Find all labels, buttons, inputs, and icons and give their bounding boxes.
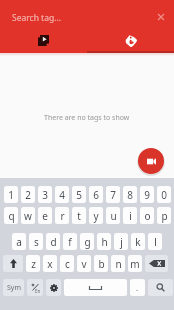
button[interactable]: c <box>60 255 74 272</box>
staticText: u <box>110 209 117 223</box>
button[interactable]: q <box>4 207 18 224</box>
button[interactable]: p <box>157 207 171 224</box>
staticText: 6 <box>93 188 99 202</box>
button[interactable]: h <box>97 233 111 250</box>
button[interactable]: 7 <box>106 186 120 203</box>
staticText: d <box>50 235 57 249</box>
staticText: j <box>120 235 123 249</box>
button[interactable]: s <box>29 233 43 250</box>
staticText: En <box>35 288 41 294</box>
button[interactable]: Record video <box>138 148 164 174</box>
staticText: r <box>60 209 65 223</box>
staticText: m <box>130 257 140 271</box>
staticText: 5 <box>76 188 82 202</box>
button[interactable]: Tags tab <box>87 30 174 51</box>
staticText: 8 <box>127 188 133 202</box>
button[interactable]: r <box>55 207 69 224</box>
staticText: 9 <box>144 188 150 202</box>
staticText: n <box>115 257 122 271</box>
staticText: i <box>129 209 132 223</box>
staticText: k <box>135 235 141 249</box>
button[interactable]: x <box>43 255 57 272</box>
staticText: e <box>42 209 48 223</box>
button[interactable]: 8 <box>123 186 137 203</box>
staticText: c <box>65 257 70 271</box>
button[interactable]: 1 <box>4 186 18 203</box>
staticText: l <box>154 235 157 249</box>
button[interactable]: . <box>130 279 145 296</box>
staticText: w <box>24 209 32 223</box>
button[interactable]: 0 <box>157 186 171 203</box>
button[interactable]: w <box>21 207 35 224</box>
button[interactable]: n <box>111 255 125 272</box>
staticText: t <box>77 209 81 223</box>
button[interactable]: d <box>46 233 60 250</box>
staticText: p <box>161 209 168 223</box>
button[interactable]: 6 <box>89 186 103 203</box>
button[interactable]: 3 <box>38 186 52 203</box>
staticText: There are no tags to show <box>44 113 130 123</box>
staticText: 1 <box>8 188 14 202</box>
staticText: q <box>8 209 15 223</box>
staticText: 7 <box>110 188 116 202</box>
staticText: 3 <box>42 188 48 202</box>
staticText: Sym <box>7 283 21 293</box>
staticText: o <box>144 209 151 223</box>
button[interactable]: Sym <box>3 279 24 296</box>
staticText: v <box>81 257 87 271</box>
staticText: g <box>84 235 91 249</box>
staticText: . <box>136 282 139 293</box>
button[interactable]: y <box>89 207 103 224</box>
staticText: z <box>31 257 36 271</box>
button[interactable]: del <box>145 255 168 272</box>
button[interactable]: 5 <box>72 186 86 203</box>
staticText: h <box>101 235 108 249</box>
button[interactable]: g <box>80 233 94 250</box>
button[interactable]: Videos tab <box>0 30 87 51</box>
staticText: f <box>68 235 72 249</box>
button[interactable]: search <box>148 279 173 296</box>
button[interactable]: 2 <box>21 186 35 203</box>
button[interactable]: z <box>26 255 40 272</box>
button[interactable]: t <box>72 207 86 224</box>
button[interactable]: u <box>106 207 120 224</box>
staticText: b <box>98 257 105 271</box>
button[interactable]: space <box>64 279 127 296</box>
staticText: 4 <box>59 188 65 202</box>
staticText: x <box>47 257 53 271</box>
button[interactable]: f <box>63 233 77 250</box>
staticText: Search tag... <box>12 12 62 24</box>
staticText: a <box>16 235 22 249</box>
button[interactable]: lang <box>27 279 43 296</box>
button[interactable]: j <box>114 233 128 250</box>
button[interactable]: Clear search <box>151 7 171 27</box>
staticText: 2 <box>25 188 31 202</box>
button[interactable]: v <box>77 255 91 272</box>
button[interactable]: o <box>140 207 154 224</box>
button[interactable]: shift <box>3 255 23 272</box>
button[interactable]: b <box>94 255 108 272</box>
button[interactable]: m <box>128 255 142 272</box>
button[interactable]: 9 <box>140 186 154 203</box>
button[interactable]: a <box>12 233 26 250</box>
staticText: s <box>34 235 39 249</box>
button[interactable]: k <box>131 233 145 250</box>
staticText: y <box>93 209 99 223</box>
staticText: 0 <box>161 188 167 202</box>
button[interactable]: e <box>38 207 52 224</box>
button[interactable]: 4 <box>55 186 69 203</box>
button[interactable]: l <box>148 233 162 250</box>
button[interactable]: i <box>123 207 137 224</box>
button[interactable]: gear <box>46 279 61 296</box>
